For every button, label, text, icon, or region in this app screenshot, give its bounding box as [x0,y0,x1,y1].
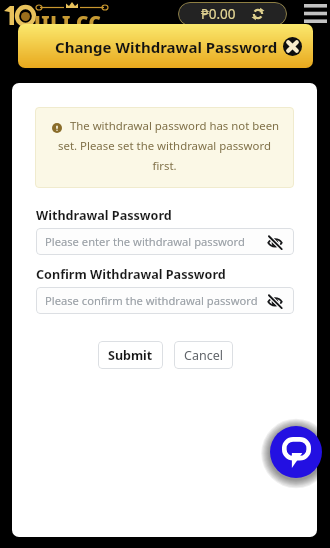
button[interactable]: Menu [301,1,329,26]
staticText: ₱0.00 [201,5,236,23]
staticText: JILI.CC [34,10,102,36]
staticText: Please confirm the withdrawal password [45,293,258,308]
staticText: Please enter the withdrawal password [45,234,245,249]
staticText: Confirm Withdrawal Password [36,266,226,283]
button[interactable]: JILI.CC [2,1,120,27]
button[interactable]: ₱0.00 [178,2,287,26]
button[interactable]: Close [282,36,303,57]
staticText: Submit [108,347,153,364]
button[interactable]: Submit [98,341,163,369]
button[interactable]: Show password [265,291,284,310]
button[interactable]: Please enter the withdrawal password [36,228,294,255]
staticText: The withdrawal password has not been set… [45,118,284,173]
button[interactable]: Show password [265,232,284,251]
staticText: Cancel [184,347,223,364]
button[interactable]: Live chat [270,426,322,478]
staticText: Change Withdrawal Password [55,37,278,57]
staticText: Withdrawal Password [36,207,172,224]
button[interactable]: Cancel [174,341,233,369]
button[interactable]: Please confirm the withdrawal password [36,287,294,314]
